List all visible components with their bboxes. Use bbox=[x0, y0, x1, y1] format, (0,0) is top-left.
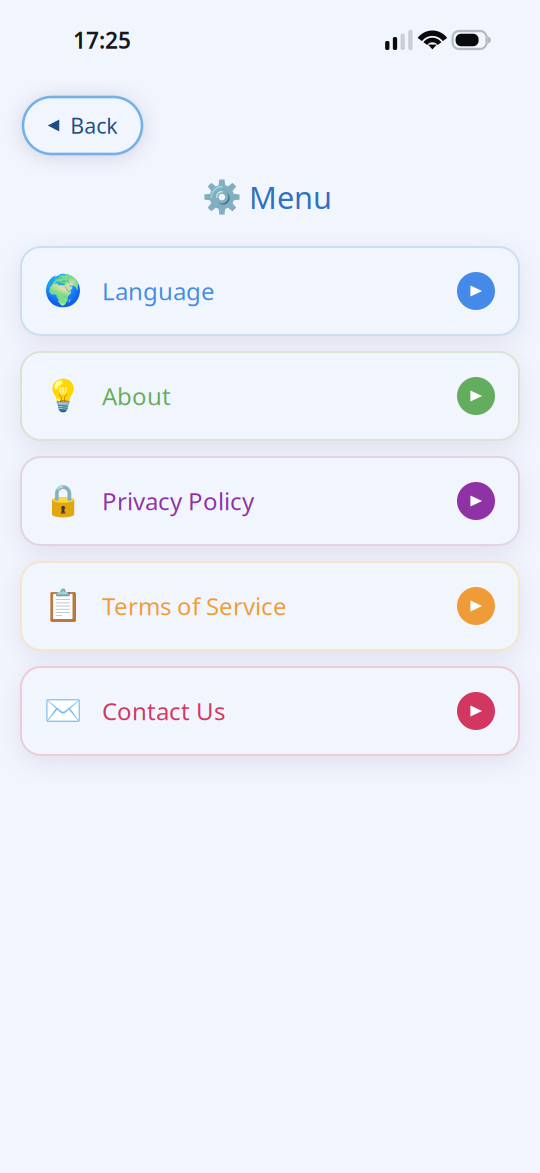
staticText: Terms of Service bbox=[102, 590, 287, 622]
staticText: About bbox=[102, 380, 171, 412]
button[interactable]: 💡 bbox=[21, 352, 519, 440]
staticText: 📋 bbox=[44, 588, 82, 623]
staticText: ⚙️ bbox=[202, 179, 242, 215]
staticText: ✉️ bbox=[44, 693, 82, 728]
staticText: 💡 bbox=[44, 378, 82, 413]
staticText: 🔒 bbox=[44, 483, 82, 518]
button[interactable]: 🔒 bbox=[21, 457, 519, 545]
button[interactable]: 🌍 bbox=[21, 247, 519, 335]
button[interactable]: 📋 bbox=[21, 562, 519, 650]
staticText: Privacy Policy bbox=[102, 485, 254, 517]
button[interactable]: Back bbox=[23, 97, 142, 154]
staticText: 🌍 bbox=[44, 273, 82, 308]
button[interactable]: ✉️ bbox=[21, 667, 519, 755]
staticText: Menu bbox=[249, 177, 332, 217]
staticText: Language bbox=[102, 275, 215, 307]
staticText: 17:25 bbox=[73, 25, 131, 55]
staticText: Contact Us bbox=[102, 695, 225, 727]
staticText: Back bbox=[70, 111, 117, 140]
